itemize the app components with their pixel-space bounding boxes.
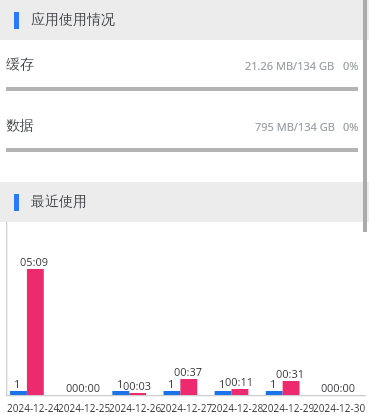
staticText: 1: [14, 376, 21, 391]
staticText: 0: [66, 380, 73, 395]
staticText: 2024-12-28: [211, 401, 264, 415]
button[interactable]: 应用使用情况: [0, 0, 369, 40]
staticText: 00:11: [225, 374, 254, 389]
staticText: 2024-12-27: [160, 401, 213, 415]
staticText: 最近使用: [31, 193, 87, 211]
staticText: 应用使用情况: [31, 11, 115, 29]
staticText: 05:09: [20, 254, 49, 269]
staticText: 缓存: [6, 56, 34, 74]
staticText: 2024-12-25: [58, 401, 111, 415]
staticText: 00:00: [327, 380, 356, 395]
staticText: 2024-12-26: [109, 401, 162, 415]
button[interactable]: 数据: [0, 101, 369, 162]
button[interactable]: 最近使用: [0, 182, 369, 222]
staticText: 00:03: [123, 378, 152, 393]
staticText: 1: [270, 376, 277, 391]
staticText: 0%: [343, 119, 359, 134]
button[interactable]: 缓存: [0, 40, 369, 101]
staticText: 00:00: [72, 380, 101, 395]
staticText: 2024-12-24: [7, 401, 60, 415]
staticText: 00:37: [174, 364, 203, 379]
staticText: 795 MB/134 GB: [255, 119, 335, 134]
staticText: 0: [321, 380, 328, 395]
staticText: 21.26 MB/134 GB: [245, 58, 335, 73]
button[interactable]: 1: [0, 222, 369, 415]
staticText: 0%: [343, 58, 359, 73]
staticText: 1: [117, 376, 124, 391]
staticText: 2024-12-30: [313, 401, 366, 415]
staticText: 数据: [6, 117, 34, 135]
staticText: 1: [219, 376, 226, 391]
staticText: 00:31: [276, 366, 305, 381]
staticText: 1: [168, 376, 175, 391]
staticText: 2024-12-29: [262, 401, 315, 415]
